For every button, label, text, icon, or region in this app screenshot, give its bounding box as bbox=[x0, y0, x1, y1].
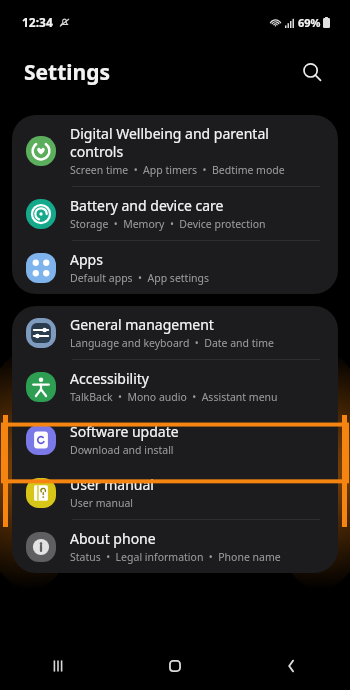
button[interactable]: Recent apps bbox=[0, 642, 116, 690]
button[interactable]: Home bbox=[116, 642, 233, 690]
staticText: Apps bbox=[70, 250, 103, 269]
staticText: Settings bbox=[24, 58, 111, 87]
staticText: Download and install bbox=[70, 443, 174, 457]
staticText: TalkBack • Mono audio • Assistant menu bbox=[70, 390, 278, 404]
staticText: 69% bbox=[298, 15, 321, 30]
button[interactable]: General management bbox=[12, 306, 338, 359]
button[interactable]: Digital Wellbeing and parental controls bbox=[12, 115, 338, 186]
staticText: Battery and device care bbox=[70, 196, 224, 215]
button[interactable]: Battery and device care bbox=[12, 187, 338, 240]
staticText: Status • Legal information • Phone name bbox=[70, 550, 281, 564]
staticText: Storage • Memory • Device protection bbox=[70, 217, 266, 231]
button[interactable]: About phone bbox=[12, 520, 338, 573]
staticText: Software update bbox=[70, 422, 179, 441]
staticText: Accessibility bbox=[70, 369, 149, 388]
staticText: Language and keyboard • Date and time bbox=[70, 336, 275, 350]
staticText: Screen time • App timers • Bedtime mode bbox=[70, 163, 285, 177]
button[interactable]: Search bbox=[292, 52, 332, 92]
button[interactable]: Software update bbox=[12, 413, 338, 466]
staticText: About phone bbox=[70, 529, 156, 548]
button[interactable]: Accessibility bbox=[12, 360, 338, 413]
staticText: Default apps • App settings bbox=[70, 271, 210, 285]
button[interactable]: Back bbox=[233, 642, 350, 690]
staticText: User manual bbox=[70, 475, 154, 494]
staticText: 12:34 bbox=[22, 14, 53, 30]
staticText: General management bbox=[70, 315, 214, 334]
button[interactable]: User manual bbox=[12, 466, 338, 519]
staticText: User manual bbox=[70, 496, 133, 510]
button[interactable]: Apps bbox=[12, 241, 338, 294]
staticText: Digital Wellbeing and parental controls bbox=[70, 124, 322, 161]
